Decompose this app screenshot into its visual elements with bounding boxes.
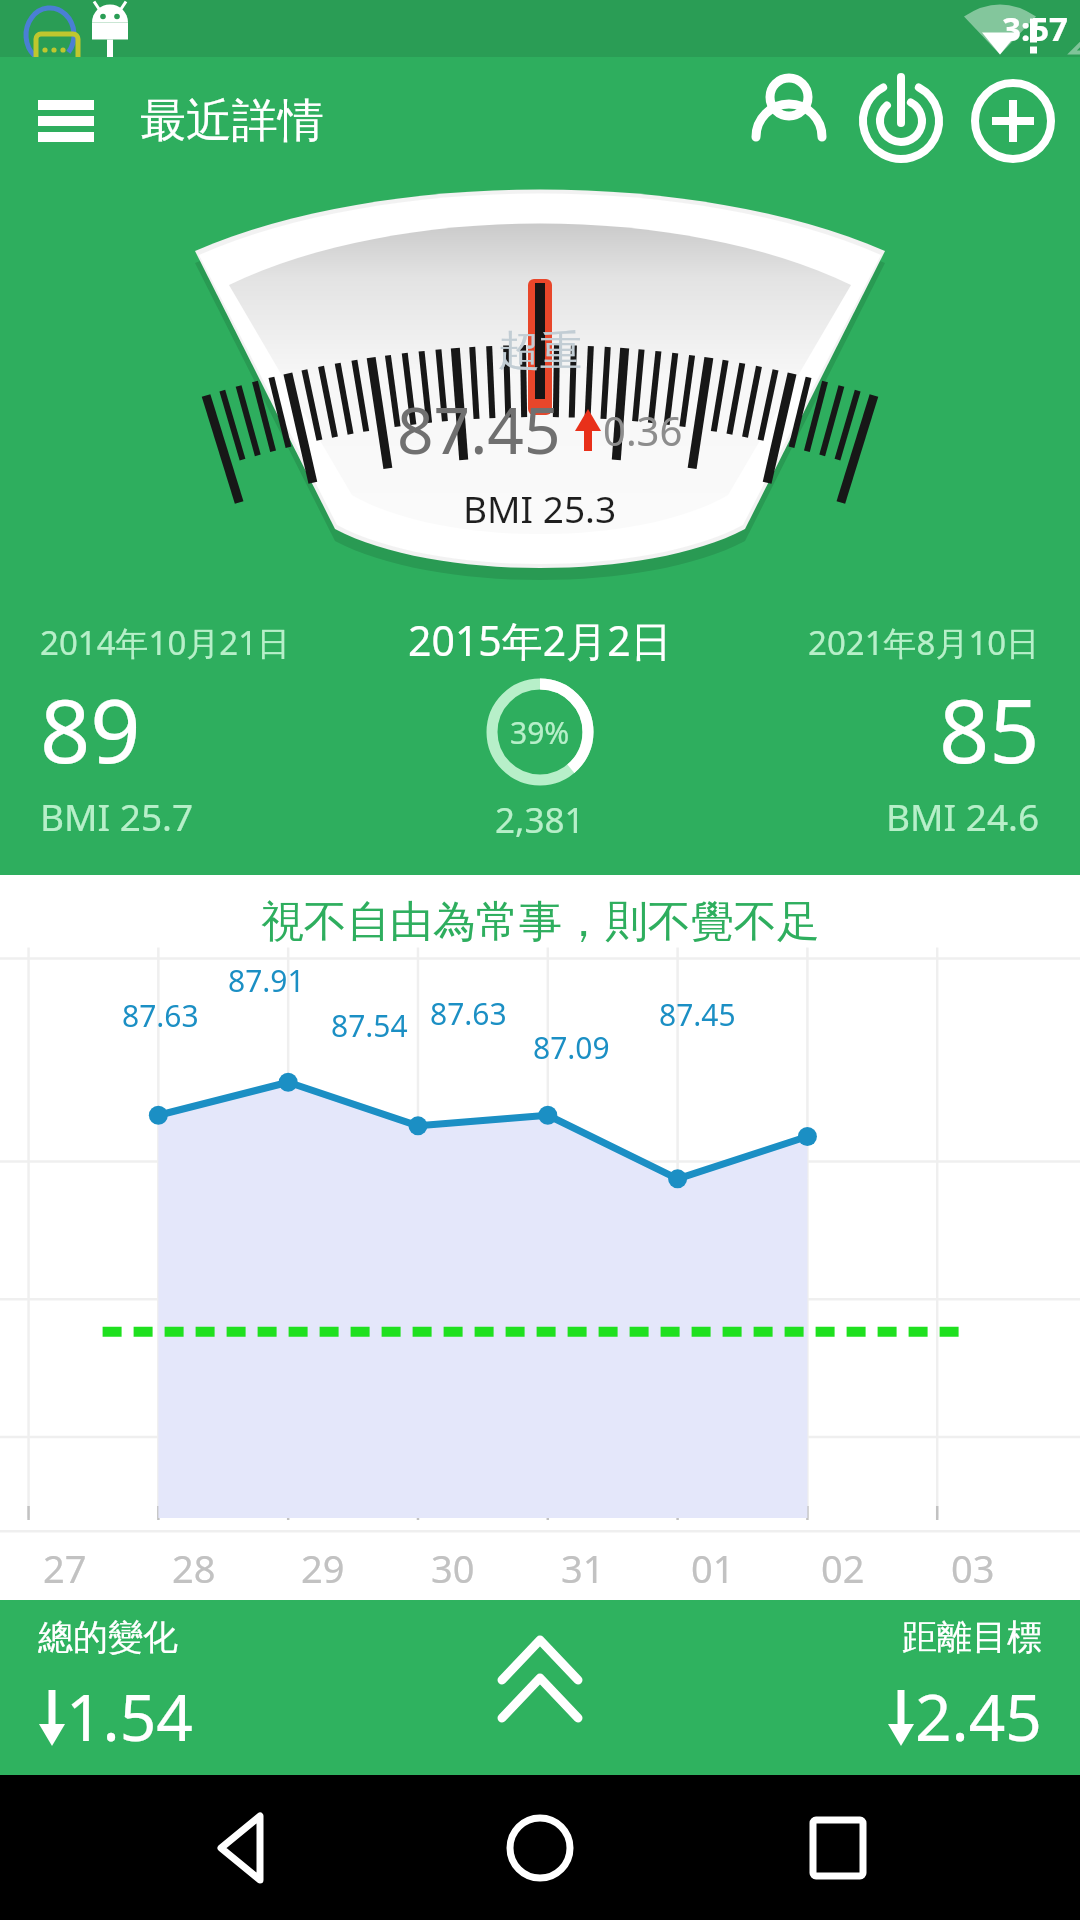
button[interactable]: Back (188, 1793, 298, 1903)
button[interactable]: 距離目標 (887, 1615, 1042, 1760)
staticText: 39% (510, 712, 570, 753)
staticText: 2014年10月21日 (40, 620, 291, 665)
staticText: 87.54 (331, 1005, 408, 1046)
staticText: 1.54 (66, 1673, 193, 1760)
button[interactable]: Menu (26, 81, 106, 161)
staticText: 01 (691, 1542, 735, 1594)
staticText: 28 (172, 1542, 216, 1594)
staticText: 87.63 (122, 995, 199, 1036)
button[interactable]: Profile (744, 76, 834, 166)
staticText: 超重 (498, 325, 582, 378)
staticText: 0.36 (603, 403, 683, 457)
button[interactable]: 總的變化 (38, 1615, 193, 1760)
staticText: BMI 25.3 (463, 483, 617, 533)
button[interactable]: Add (968, 76, 1058, 166)
staticText: 03 (951, 1542, 995, 1594)
staticText: 最近詳情 (140, 92, 324, 150)
staticText: 87.45 (659, 994, 736, 1035)
staticText: 29 (301, 1542, 345, 1594)
staticText: 27 (43, 1542, 87, 1594)
staticText: 2.45 (915, 1673, 1042, 1760)
staticText: 87.09 (533, 1027, 610, 1068)
button[interactable]: Sync (856, 76, 946, 166)
button[interactable]: Recents (783, 1793, 893, 1903)
button[interactable]: 視不自由為常事，則不覺不足 (0, 875, 1080, 1600)
staticText: 2021年8月10日 (808, 620, 1040, 665)
staticText: 85 (939, 669, 1040, 789)
staticText: 距離目標 (902, 1615, 1042, 1659)
staticText: 02 (821, 1542, 865, 1594)
button[interactable]: Expand (480, 1638, 600, 1738)
staticText: 89 (40, 669, 141, 789)
staticText: 視不自由為常事，則不覺不足 (261, 895, 820, 949)
staticText: 87.45 (397, 386, 561, 473)
staticText: 31 (561, 1542, 605, 1594)
staticText: BMI 25.7 (40, 791, 194, 841)
staticText: 87.63 (430, 993, 507, 1034)
staticText: 總的變化 (38, 1615, 178, 1659)
staticText: 3:57 (1002, 6, 1068, 51)
staticText: 2,381 (495, 796, 585, 844)
staticText: 2015年2月2日 (408, 612, 672, 668)
button[interactable]: Home (485, 1793, 595, 1903)
staticText: 87.91 (228, 960, 305, 1001)
staticText: BMI 24.6 (886, 791, 1040, 841)
staticText: 30 (431, 1542, 475, 1594)
